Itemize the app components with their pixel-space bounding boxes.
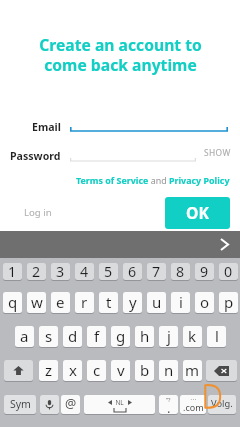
- button[interactable]: m: [183, 360, 202, 381]
- staticText: i: [179, 292, 183, 312]
- staticText: 0: [224, 263, 233, 279]
- staticText: e: [56, 292, 65, 312]
- button[interactable]: Backspace: [206, 360, 237, 381]
- button[interactable]: r: [75, 292, 94, 313]
- staticText: w: [31, 292, 43, 312]
- staticText: SHOW: [204, 147, 231, 158]
- button[interactable]: 7: [147, 263, 166, 280]
- staticText: 5: [104, 263, 113, 279]
- staticText: .: [167, 399, 171, 414]
- staticText: Email: [32, 120, 61, 134]
- staticText: z: [45, 360, 53, 380]
- button[interactable]: k: [183, 326, 202, 347]
- staticText: m: [185, 360, 200, 380]
- staticText: c: [93, 360, 101, 380]
- button[interactable]: i: [171, 292, 190, 313]
- button[interactable]: Terms of Service and Privacy Policy: [76, 174, 230, 186]
- button[interactable]: OK: [165, 197, 230, 229]
- button[interactable]: 8: [171, 263, 190, 280]
- button[interactable]: Shift: [4, 360, 33, 381]
- staticText: Log in: [24, 206, 52, 219]
- staticText: 8: [176, 263, 185, 279]
- staticText: Sym: [10, 397, 31, 411]
- staticText: .com: [183, 401, 204, 413]
- button[interactable]: Log in: [18, 201, 60, 223]
- button[interactable]: h: [135, 326, 154, 347]
- button[interactable]: .com: [180, 395, 206, 414]
- button[interactable]: y: [123, 292, 142, 313]
- staticText: g: [116, 326, 126, 346]
- staticText: 4: [80, 263, 89, 279]
- staticText: 7: [152, 263, 161, 279]
- staticText: k: [188, 326, 197, 346]
- button[interactable]: c: [87, 360, 106, 381]
- button[interactable]: l: [207, 326, 226, 347]
- button[interactable]: q: [3, 292, 22, 313]
- staticText: r: [81, 292, 88, 312]
- button[interactable]: Sym: [4, 395, 36, 414]
- staticText: 6: [128, 263, 137, 279]
- staticText: j: [167, 326, 171, 346]
- staticText: 2: [32, 263, 41, 279]
- button[interactable]: t: [99, 292, 118, 313]
- staticText: p: [224, 292, 234, 312]
- staticText: NL: [112, 398, 128, 407]
- button[interactable]: 6: [123, 263, 142, 280]
- button[interactable]: u: [147, 292, 166, 313]
- button[interactable]: o: [195, 292, 214, 313]
- staticText: x: [69, 360, 77, 380]
- staticText: Create an account to come back anytime: [39, 34, 202, 76]
- button[interactable]: Voice input: [40, 395, 59, 414]
- button[interactable]: Space: [84, 395, 155, 414]
- staticText: h: [140, 326, 150, 346]
- staticText: u: [152, 292, 162, 312]
- button[interactable]: s: [39, 326, 58, 347]
- button[interactable]: g: [111, 326, 130, 347]
- button[interactable]: n: [159, 360, 178, 381]
- button[interactable]: 2: [27, 263, 46, 280]
- staticText: Password: [10, 149, 61, 163]
- staticText: Volg.: [211, 397, 233, 410]
- button[interactable]: p: [219, 292, 238, 313]
- button[interactable]: b: [135, 360, 154, 381]
- staticText: f: [94, 326, 100, 346]
- staticText: @: [65, 395, 77, 412]
- button[interactable]: f: [87, 326, 106, 347]
- button[interactable]: z: [39, 360, 58, 381]
- button[interactable]: More suggestions: [212, 231, 240, 258]
- staticText: 3: [56, 263, 65, 279]
- button[interactable]: 4: [75, 263, 94, 280]
- staticText: l: [215, 326, 219, 346]
- staticText: Terms of Service and Privacy Policy: [76, 174, 230, 186]
- button[interactable]: 9: [195, 263, 214, 280]
- staticText: 1: [8, 263, 17, 279]
- button[interactable]: @: [61, 395, 80, 414]
- staticText: OK: [186, 202, 209, 223]
- staticText: ”?: [166, 396, 171, 403]
- button[interactable]: a: [15, 326, 34, 347]
- button[interactable]: x: [63, 360, 82, 381]
- button[interactable]: Volg.: [208, 395, 236, 414]
- staticText: o: [200, 292, 210, 312]
- button[interactable]: 0: [219, 263, 238, 280]
- button[interactable]: w: [27, 292, 46, 313]
- button[interactable]: SHOW: [199, 144, 236, 160]
- button[interactable]: e: [51, 292, 70, 313]
- staticText: s: [45, 326, 53, 346]
- staticText: d: [68, 326, 78, 346]
- staticText: y: [129, 292, 137, 312]
- staticText: v: [117, 360, 125, 380]
- staticText: n: [164, 360, 174, 380]
- staticText: ⋯: [190, 395, 196, 402]
- staticText: b: [140, 360, 150, 380]
- button[interactable]: .: [159, 395, 178, 414]
- button[interactable]: 3: [51, 263, 70, 280]
- staticText: q: [8, 292, 18, 312]
- button[interactable]: 1: [3, 263, 22, 280]
- staticText: a: [20, 326, 29, 346]
- button[interactable]: j: [159, 326, 178, 347]
- button[interactable]: 5: [99, 263, 118, 280]
- button[interactable]: v: [111, 360, 130, 381]
- button[interactable]: d: [63, 326, 82, 347]
- staticText: t: [106, 292, 112, 312]
